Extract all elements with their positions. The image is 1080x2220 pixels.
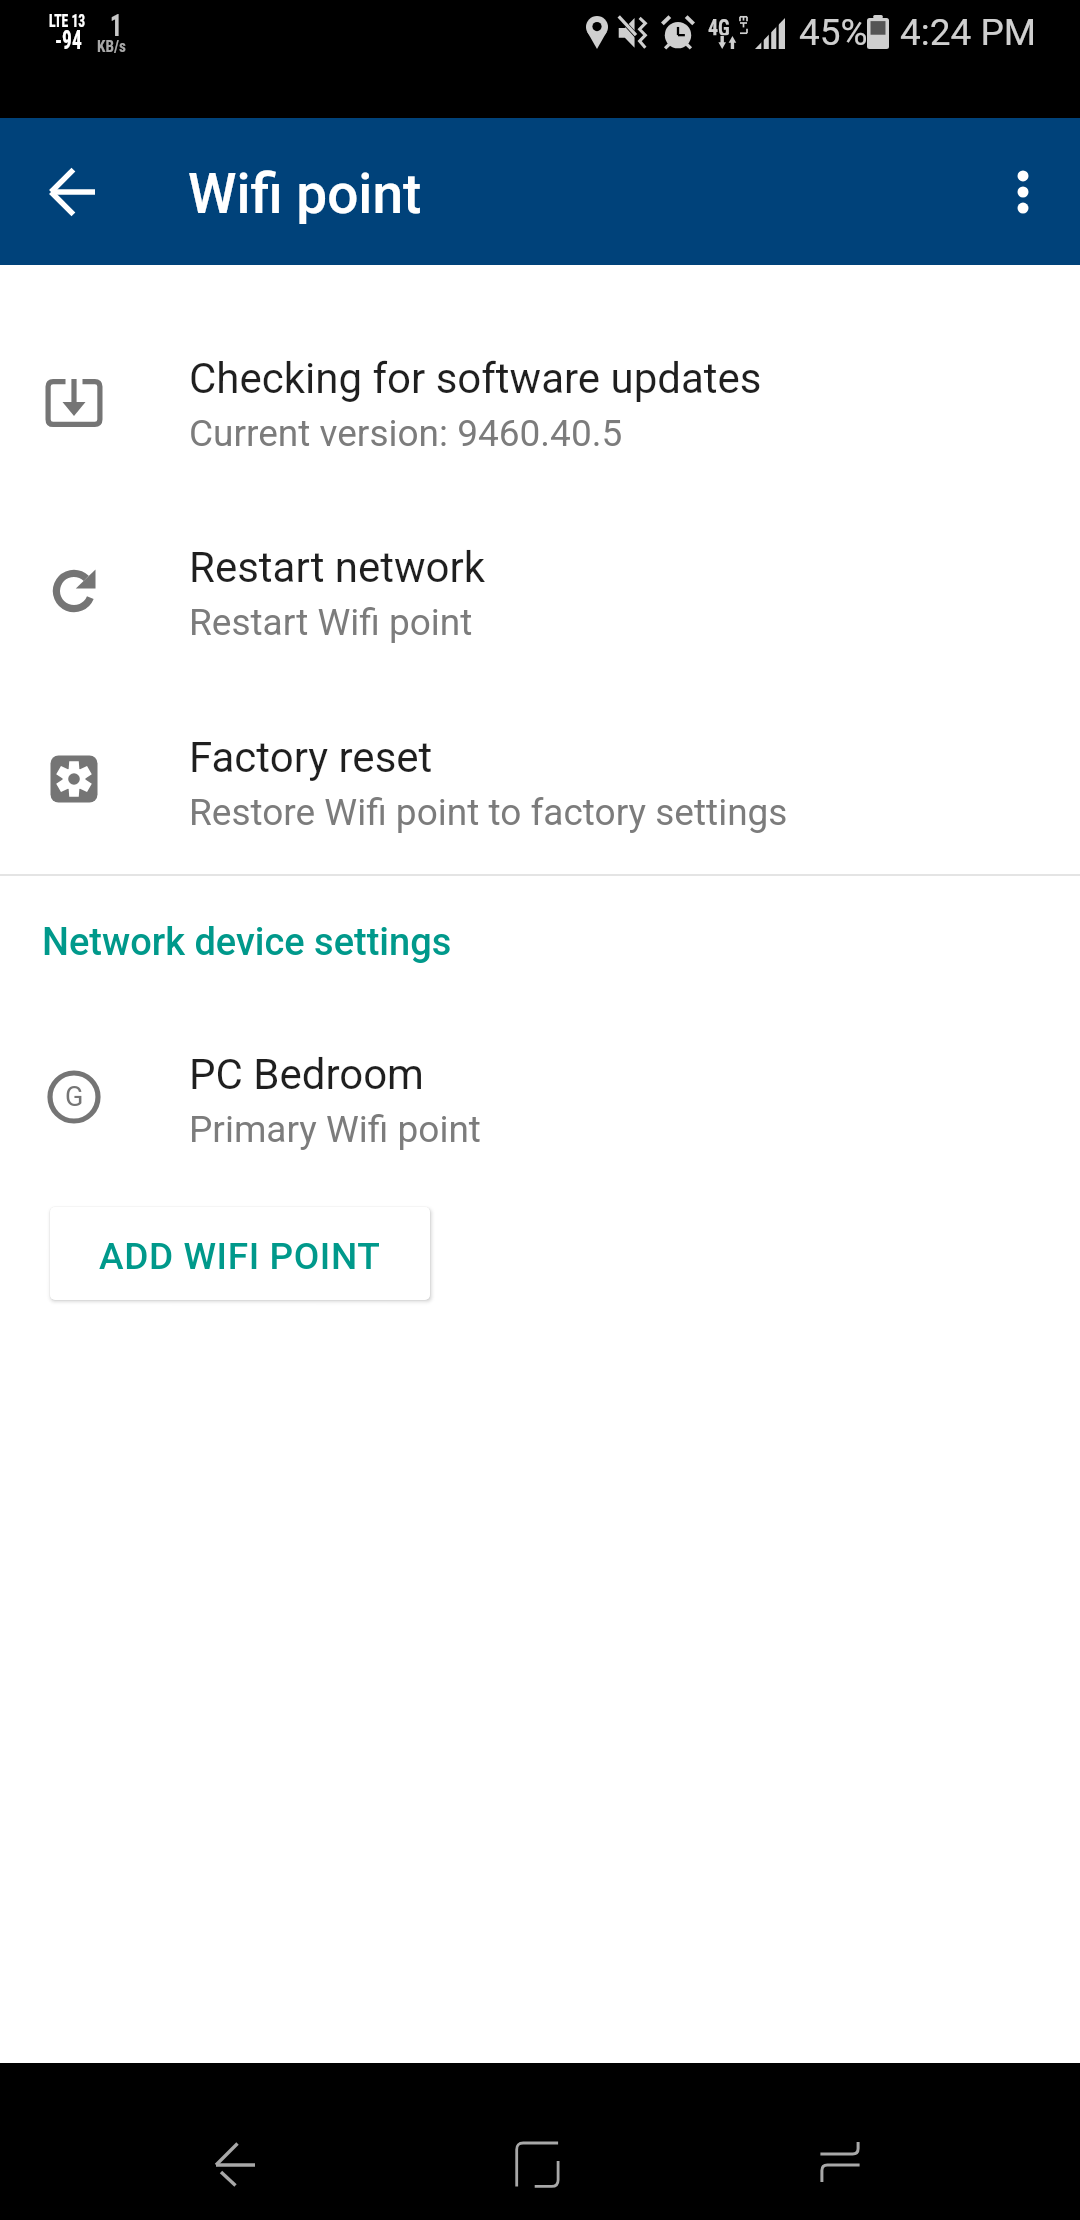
staticText: Primary Wifi point xyxy=(189,1108,481,1151)
staticText: 45% xyxy=(799,11,868,54)
staticText: LTE 13 xyxy=(49,9,86,31)
button[interactable]: Restart network xyxy=(0,497,1080,685)
staticText: Network device settings xyxy=(42,920,452,965)
staticText: Factory reset xyxy=(189,733,433,782)
button[interactable]: Navigate up xyxy=(25,144,121,240)
staticText: Current version: 9460.40.5 xyxy=(189,412,623,455)
staticText: Restart Wifi point xyxy=(189,601,473,644)
staticText: Wifi point xyxy=(188,162,422,226)
staticText: ADD WIFI POINT xyxy=(99,1235,381,1278)
staticText: 4:24 PM xyxy=(900,11,1037,54)
button[interactable]: Back xyxy=(185,2092,285,2192)
staticText: -94 xyxy=(55,26,82,55)
button[interactable]: Recent apps xyxy=(795,2092,895,2192)
button[interactable]: G xyxy=(0,1003,1080,1191)
button[interactable]: More options xyxy=(975,144,1071,240)
staticText: 4G xyxy=(708,15,730,35)
staticText: Restart network xyxy=(189,543,486,592)
button[interactable]: Factory reset xyxy=(0,685,1080,873)
staticText: PC Bedroom xyxy=(189,1050,424,1099)
staticText: G xyxy=(65,1081,84,1113)
button[interactable]: Home xyxy=(490,2092,590,2192)
staticText: 1 xyxy=(110,6,123,44)
button[interactable]: Checking for software updates xyxy=(0,309,1080,497)
staticText: Restore Wifi point to factory settings xyxy=(189,791,788,834)
staticText: KB/s xyxy=(97,37,126,56)
button[interactable]: ADD WIFI POINT xyxy=(50,1207,430,1300)
staticText: Checking for software updates xyxy=(189,354,762,403)
